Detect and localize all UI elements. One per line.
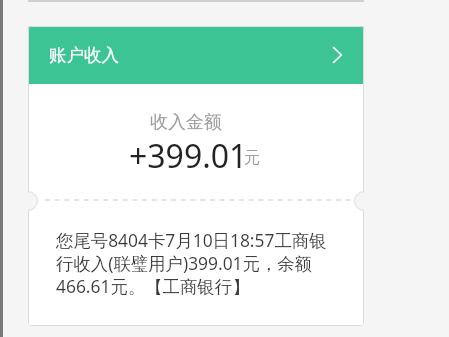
staticText: 账户收入 bbox=[49, 44, 119, 66]
staticText: 元 bbox=[244, 148, 260, 168]
staticText: 您尾号8404卡7月10日18:57工商银行收入(联璧用户)399.01元，余额… bbox=[56, 228, 334, 298]
other: Details bbox=[327, 45, 347, 65]
button[interactable]: 您尾号8404卡7月10日18:57工商银行收入(联璧用户)399.01元，余额… bbox=[28, 211, 364, 325]
button[interactable]: 账户收入 bbox=[28, 26, 364, 84]
staticText: +399.01 bbox=[129, 134, 248, 178]
staticText: 收入金额 bbox=[150, 111, 222, 134]
